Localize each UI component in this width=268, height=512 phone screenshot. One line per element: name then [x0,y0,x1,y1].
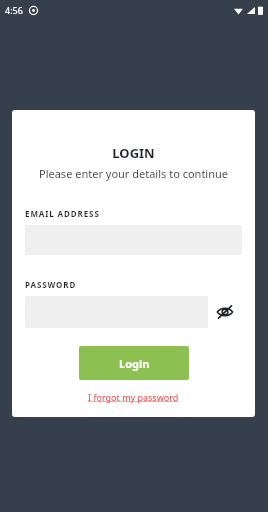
staticText: PASSWORD [25,279,77,290]
button[interactable]: Show password [208,296,242,328]
button[interactable]: Login [79,346,189,380]
staticText: I forgot my password [88,391,179,403]
button[interactable]: I forgot my password [88,391,179,403]
staticText: Please enter your details to continue [12,166,255,181]
staticText: EMAIL ADDRESS [25,208,100,219]
staticText: Login [119,356,150,371]
button[interactable]: Show password [25,296,242,328]
staticText: LOGIN [12,144,255,162]
staticText: 4:56 [5,4,23,16]
